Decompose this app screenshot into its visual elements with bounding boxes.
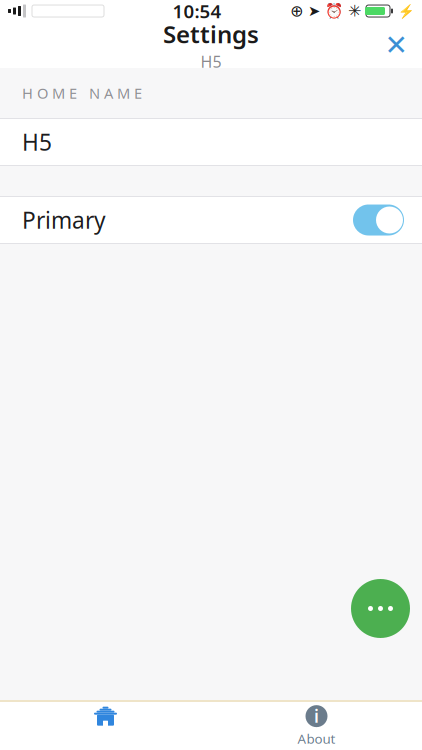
staticText: ⊕ xyxy=(290,2,303,20)
button[interactable]: Close xyxy=(374,23,418,67)
staticText: H5 xyxy=(200,51,221,72)
button[interactable]: Home xyxy=(0,702,211,750)
staticText: ✳ xyxy=(348,2,361,20)
staticText: ✕ xyxy=(384,29,407,61)
button[interactable]: Primary xyxy=(0,197,422,243)
staticText: ➤ xyxy=(308,3,320,19)
staticText: 10:54 xyxy=(172,0,221,23)
staticText: ⏰ xyxy=(325,3,343,19)
staticText: Settings xyxy=(163,18,259,50)
button[interactable]: i xyxy=(211,702,422,750)
staticText: ⚡ xyxy=(398,3,415,19)
staticText: i xyxy=(314,705,319,728)
staticText: H5 xyxy=(22,127,52,157)
staticText: H O M E N A M E xyxy=(22,83,142,103)
button[interactable]: H5 xyxy=(0,119,422,165)
staticText: About xyxy=(297,730,335,747)
staticText: Primary xyxy=(22,205,106,235)
button[interactable]: More options xyxy=(351,579,410,638)
